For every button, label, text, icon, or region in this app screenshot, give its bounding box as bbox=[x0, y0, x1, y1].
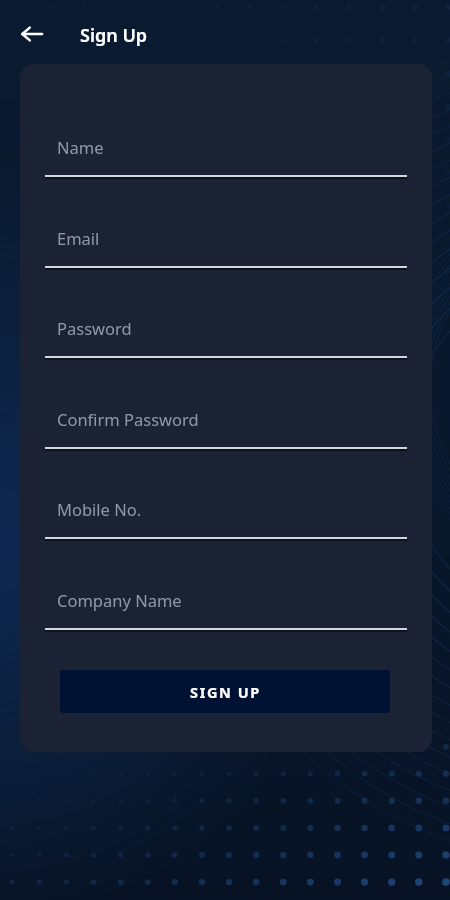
button[interactable]: Name bbox=[57, 136, 104, 158]
button[interactable]: Email bbox=[57, 227, 100, 249]
button[interactable]: Company Name bbox=[57, 589, 182, 611]
button[interactable]: Back bbox=[12, 14, 52, 54]
button[interactable]: Confirm Password bbox=[57, 408, 199, 430]
staticText: SIGN UP bbox=[190, 682, 261, 702]
button[interactable]: Mobile No. bbox=[57, 498, 142, 520]
button[interactable]: SIGN UP bbox=[60, 670, 390, 713]
button[interactable]: Password bbox=[57, 317, 132, 339]
staticText: Sign Up bbox=[80, 23, 148, 48]
